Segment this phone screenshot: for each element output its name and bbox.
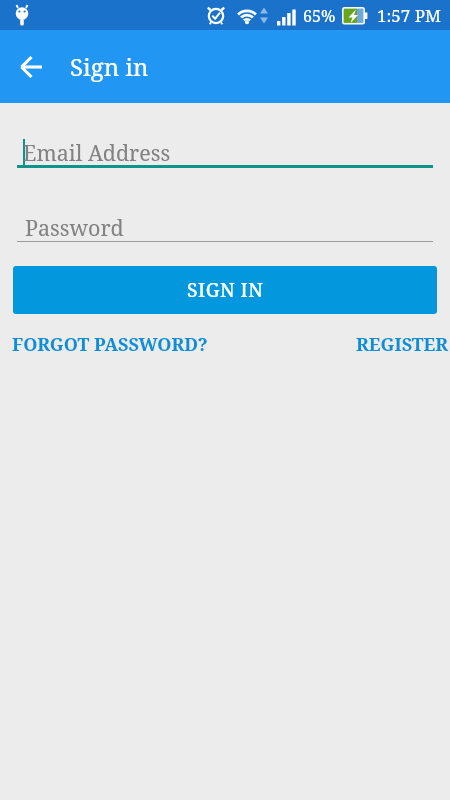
staticText: FORGOT PASSWORD?: [12, 332, 208, 357]
staticText: Sign in: [70, 50, 149, 83]
button[interactable]: REGISTER: [356, 332, 449, 357]
button[interactable]: [17, 207, 433, 243]
staticText: Email Address: [23, 138, 171, 167]
staticText: SIGN IN: [187, 277, 264, 303]
button[interactable]: FORGOT PASSWORD?: [12, 332, 208, 357]
button[interactable]: SIGN IN: [13, 266, 437, 314]
staticText: 1:57 PM: [377, 4, 442, 27]
button[interactable]: [17, 131, 433, 168]
staticText: REGISTER: [356, 332, 449, 357]
button[interactable]: [11, 45, 55, 89]
staticText: Password: [25, 213, 124, 242]
staticText: 65%: [303, 5, 336, 27]
